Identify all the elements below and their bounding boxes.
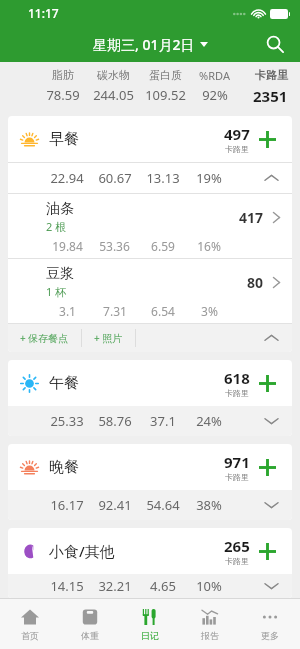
button[interactable]: 首页	[0, 599, 60, 649]
staticText: 小食/其他	[49, 541, 115, 561]
staticText: 53.36	[99, 238, 130, 254]
staticText: 24%	[196, 412, 222, 430]
staticText: 92%	[202, 86, 228, 104]
staticText: 卡路里	[225, 472, 249, 482]
staticText: 78.59	[46, 86, 80, 104]
button[interactable]: Add food to 小食/其他	[250, 534, 284, 568]
staticText: 19.84	[52, 238, 83, 254]
staticText: 54.64	[146, 496, 180, 514]
button[interactable]: 油条	[8, 194, 292, 258]
staticText: 13.13	[146, 169, 180, 187]
staticText: 4.65	[150, 577, 176, 595]
staticText: %RDA	[199, 68, 230, 83]
staticText: 午餐	[49, 374, 79, 393]
staticText: 卡路里	[225, 144, 249, 154]
staticText: 16.17	[50, 496, 84, 514]
button[interactable]: 14.15	[8, 574, 292, 598]
staticText: 244.05	[93, 86, 134, 104]
staticText: 2351	[253, 86, 288, 106]
staticText: 16%	[197, 238, 221, 254]
button[interactable]: Add food to 午餐	[250, 366, 284, 400]
staticText: 14.15	[50, 577, 84, 595]
staticText: 19%	[196, 169, 222, 187]
staticText: 碳水物	[97, 68, 130, 82]
staticText: 蛋白质	[149, 68, 182, 82]
staticText: 日记	[141, 630, 159, 641]
staticText: 60.67	[98, 169, 132, 187]
staticText: 10%	[196, 577, 222, 595]
staticText: 6.54	[151, 303, 175, 319]
staticText: 497	[224, 124, 250, 144]
staticText: + 照片	[94, 331, 123, 345]
button[interactable]: Search	[258, 27, 292, 61]
button[interactable]: 更多	[240, 599, 300, 649]
button[interactable]: 午餐	[8, 360, 292, 406]
staticText: 109.52	[145, 86, 186, 104]
staticText: 265	[224, 536, 250, 556]
staticText: 6.59	[151, 238, 175, 254]
staticText: 油条	[46, 200, 74, 218]
button[interactable]: Collapse	[265, 334, 278, 342]
button[interactable]: + 照片	[82, 324, 135, 352]
staticText: 32.21	[98, 577, 132, 595]
staticText: 豆浆	[46, 265, 74, 283]
staticText: 更多	[261, 630, 279, 641]
button[interactable]: 日记	[120, 599, 180, 649]
button[interactable]: + 保存餐点	[8, 324, 81, 352]
staticText: 1 杯	[46, 284, 67, 299]
button[interactable]: 25.33	[8, 406, 292, 436]
button[interactable]: 报告	[180, 599, 240, 649]
staticText: 早餐	[49, 130, 79, 149]
staticText: 22.94	[50, 169, 84, 187]
button[interactable]: Add food to 早餐	[250, 122, 284, 156]
button[interactable]: 豆浆	[8, 259, 292, 323]
staticText: 618	[224, 368, 250, 388]
staticText: 92.41	[98, 496, 132, 514]
staticText: + 保存餐点	[20, 331, 69, 345]
staticText: 38%	[196, 496, 222, 514]
button[interactable]: 22.94	[8, 163, 292, 193]
staticText: 星期三, 01月2日	[93, 35, 195, 54]
button[interactable]: 星期三, 01月2日	[87, 32, 214, 57]
button[interactable]: 体重	[60, 599, 120, 649]
button[interactable]: 16.17	[8, 490, 292, 520]
staticText: 晚餐	[49, 458, 79, 477]
staticText: 2 根	[46, 219, 67, 234]
button[interactable]: 小食/其他	[8, 528, 292, 574]
staticText: 体重	[81, 630, 99, 641]
staticText: 58.76	[98, 412, 132, 430]
staticText: 脂肪	[52, 68, 74, 82]
staticText: 971	[224, 452, 250, 472]
staticText: 25.33	[50, 412, 84, 430]
staticText: 3%	[201, 303, 218, 319]
button[interactable]: 早餐	[8, 116, 292, 162]
staticText: 7.31	[103, 303, 127, 319]
staticText: 报告	[201, 630, 219, 641]
staticText: 3.1	[59, 303, 76, 319]
staticText: 37.1	[150, 412, 176, 430]
button[interactable]: Add food to 晚餐	[250, 450, 284, 484]
staticText: 417	[239, 208, 264, 227]
staticText: 卡路里	[225, 556, 249, 566]
staticText: 卡路里	[255, 68, 288, 82]
staticText: 11:17	[28, 5, 59, 21]
staticText: 80	[247, 273, 264, 292]
staticText: 卡路里	[225, 388, 249, 398]
button[interactable]: 晚餐	[8, 444, 292, 490]
staticText: 首页	[21, 630, 39, 641]
